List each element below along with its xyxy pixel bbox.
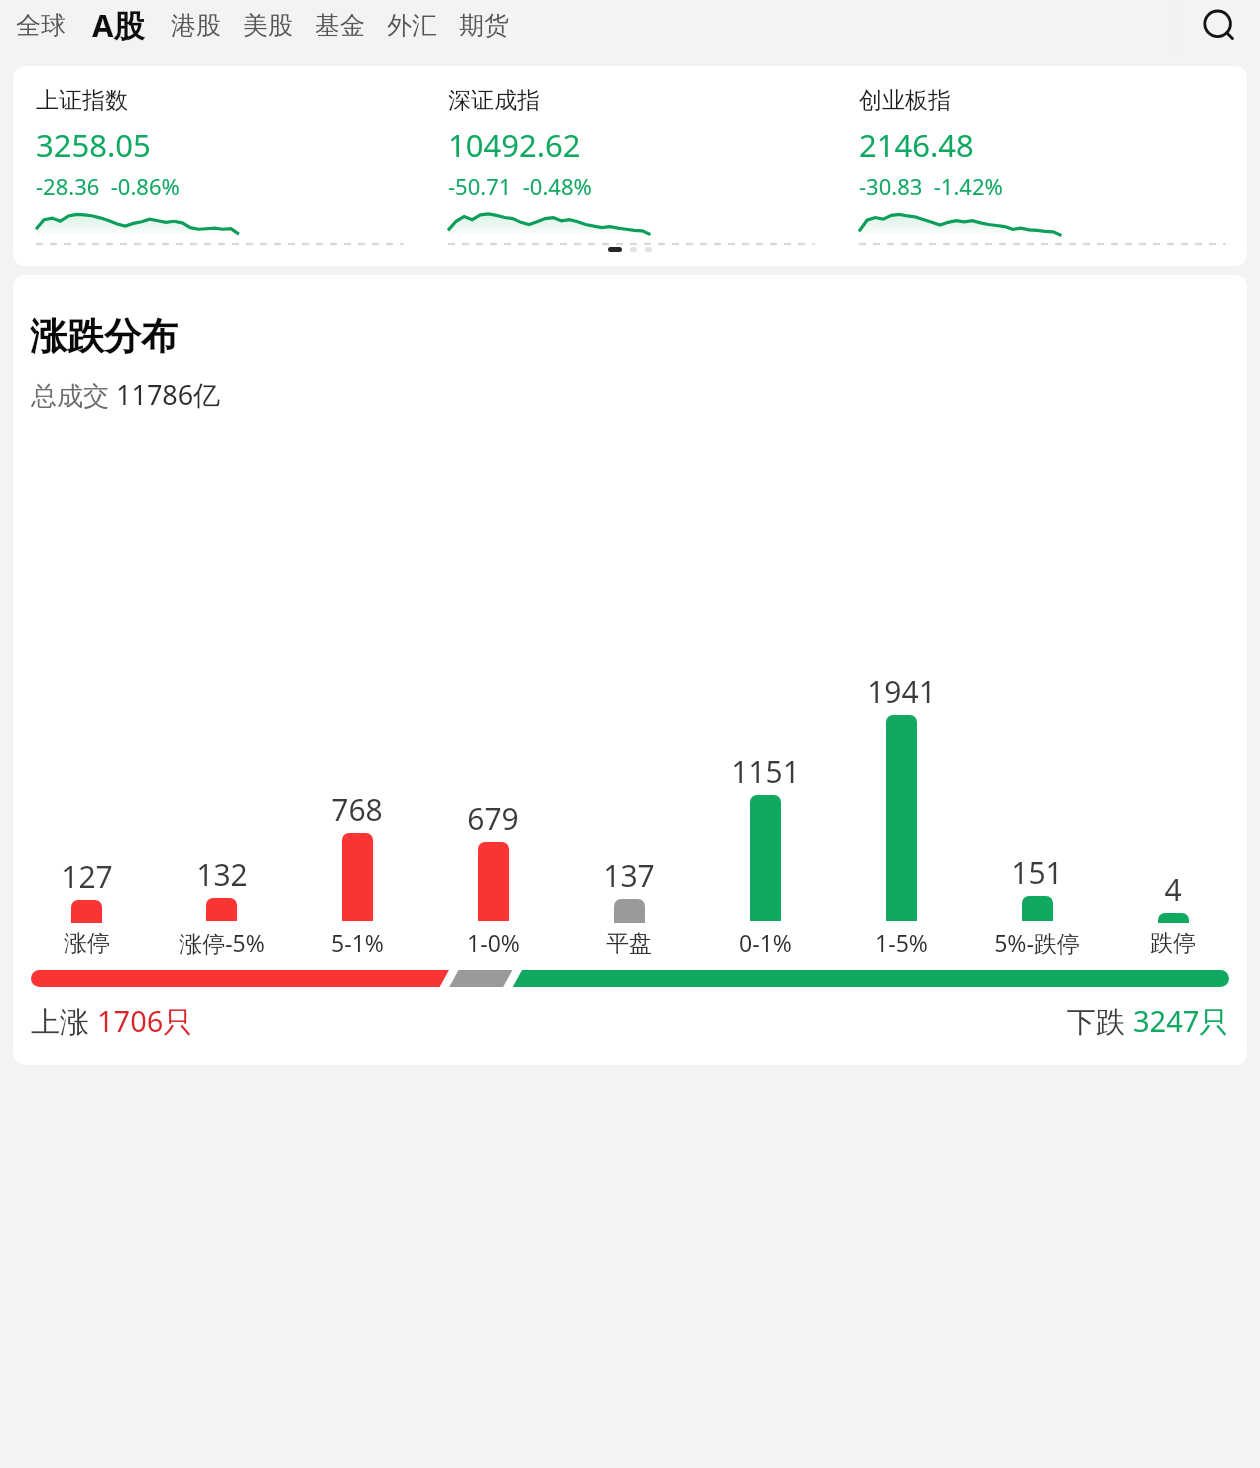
staticText: 深证成指: [448, 86, 540, 115]
staticText: 创业板指: [859, 86, 951, 115]
staticText: 4: [1164, 869, 1182, 910]
button[interactable]: 期货: [457, 6, 511, 45]
button[interactable]: 132: [154, 431, 289, 958]
staticText: 132: [196, 854, 248, 895]
button[interactable]: Search: [1194, 1, 1246, 53]
staticText: 3247只: [1133, 1001, 1229, 1041]
staticText: 平盘: [606, 929, 652, 958]
staticText: 1-5%: [875, 927, 928, 958]
staticText: 上涨: [31, 1001, 97, 1041]
button[interactable]: A股: [90, 0, 147, 50]
staticText: -28.36 -0.86%: [36, 171, 180, 201]
staticText: 5-1%: [331, 927, 384, 958]
staticText: 3258.05: [36, 124, 151, 166]
staticText: 跌停: [1150, 929, 1196, 958]
staticText: 全球: [16, 10, 66, 41]
staticText: 137: [603, 855, 655, 896]
staticText: 10492.62: [448, 124, 581, 166]
staticText: 涨停-5%: [179, 927, 265, 958]
button[interactable]: 4: [1105, 431, 1241, 958]
button[interactable]: 127: [19, 431, 154, 958]
button[interactable]: 美股: [241, 6, 295, 45]
button[interactable]: 1151: [697, 431, 833, 958]
staticText: -30.83 -1.42%: [859, 171, 1003, 201]
staticText: 1-0%: [467, 927, 520, 958]
staticText: 1706只: [97, 1001, 193, 1041]
button[interactable]: 137: [561, 431, 697, 958]
staticText: 11786亿: [116, 376, 221, 413]
button[interactable]: 外汇: [385, 6, 439, 45]
staticText: 美股: [243, 10, 293, 41]
staticText: -50.71 -0.48%: [448, 171, 592, 201]
staticText: A股: [92, 4, 145, 46]
button[interactable]: 679: [425, 431, 561, 958]
button[interactable]: 全球: [14, 6, 68, 45]
staticText: 1941: [867, 671, 936, 712]
button[interactable]: 港股: [169, 6, 223, 45]
button[interactable]: 上证指数: [13, 66, 1247, 266]
staticText: 下跌: [1067, 1001, 1133, 1041]
staticText: 涨跌分布: [30, 313, 178, 360]
button[interactable]: 涨跌分布: [13, 275, 1247, 1065]
button[interactable]: 基金: [313, 6, 367, 45]
staticText: 总成交: [31, 377, 116, 413]
staticText: 港股: [171, 10, 221, 41]
button[interactable]: 768: [289, 431, 425, 958]
staticText: 0-1%: [739, 927, 792, 958]
staticText: 127: [61, 856, 113, 897]
staticText: 5%-跌停: [994, 927, 1080, 958]
staticText: 2146.48: [859, 124, 974, 166]
staticText: 679: [467, 798, 519, 839]
staticText: 外汇: [387, 10, 437, 41]
button[interactable]: 1941: [833, 431, 969, 958]
staticText: 基金: [315, 10, 365, 41]
staticText: 1151: [731, 751, 800, 792]
staticText: 151: [1011, 852, 1063, 893]
staticText: 涨停: [64, 929, 110, 958]
staticText: 期货: [459, 10, 509, 41]
staticText: 768: [331, 789, 383, 830]
button[interactable]: 151: [969, 431, 1105, 958]
staticText: 上证指数: [36, 86, 128, 115]
